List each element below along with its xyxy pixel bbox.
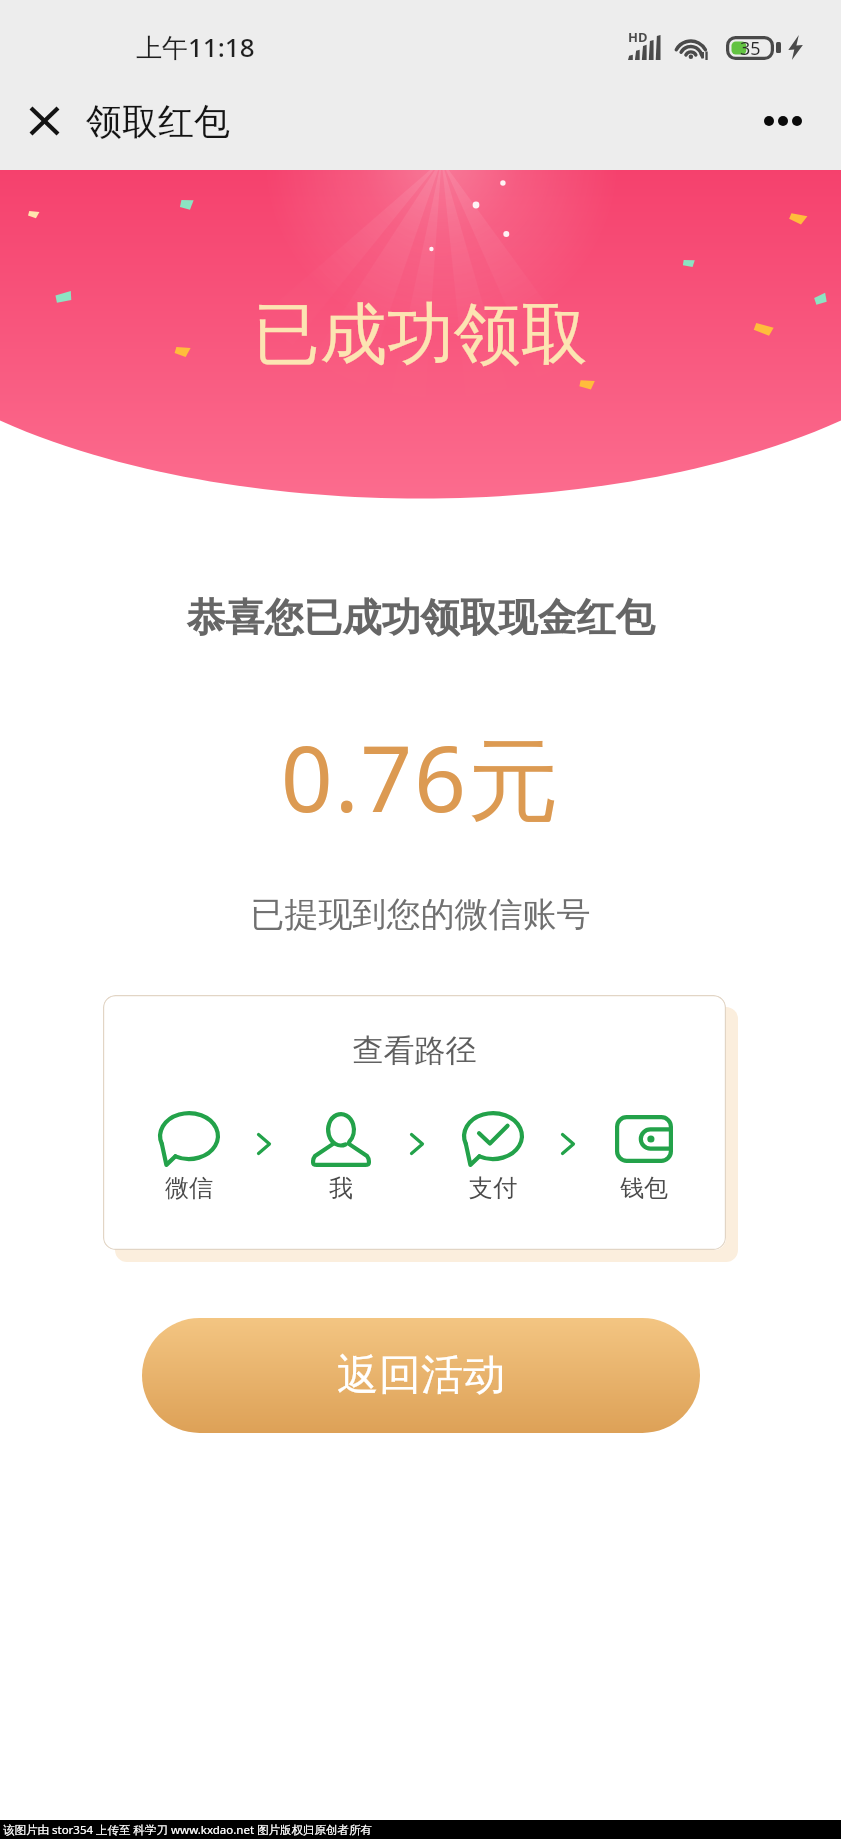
staticText: 上午11:18 xyxy=(136,29,255,65)
button[interactable]: 钱包 xyxy=(599,1171,689,1205)
staticText: 0.76元 xyxy=(0,715,841,839)
staticText: HD xyxy=(628,28,648,46)
staticText: 该图片由 stor354 上传至 科学刀 www.kxdao.net 图片版权归… xyxy=(3,1822,373,1838)
button[interactable]: Close xyxy=(0,76,85,166)
button[interactable]: 我 xyxy=(296,1171,386,1205)
staticText: 已成功领取 xyxy=(0,292,841,376)
button[interactable]: More options xyxy=(738,76,828,166)
button[interactable]: WeChat xyxy=(154,1104,224,1174)
staticText: 返回活动 xyxy=(337,1349,505,1402)
button[interactable]: Wallet xyxy=(609,1104,679,1174)
staticText: 领取红包 xyxy=(86,99,230,144)
button[interactable]: Pay xyxy=(458,1104,528,1174)
staticText: 我 xyxy=(329,1173,353,1203)
button[interactable]: Me xyxy=(306,1104,376,1174)
staticText: 微信 xyxy=(165,1173,213,1203)
staticText: 支付 xyxy=(469,1173,517,1203)
staticText: 恭喜您已成功领取现金红包 xyxy=(0,593,841,642)
staticText: 已提现到您的微信账号 xyxy=(0,893,841,936)
staticText: 查看路径 xyxy=(103,1031,726,1070)
button[interactable]: 微信 xyxy=(144,1171,234,1205)
button[interactable]: 支付 xyxy=(448,1171,538,1205)
staticText: 35 xyxy=(740,36,761,60)
staticText: 钱包 xyxy=(620,1173,668,1203)
button[interactable]: 返回活动 xyxy=(142,1318,700,1433)
